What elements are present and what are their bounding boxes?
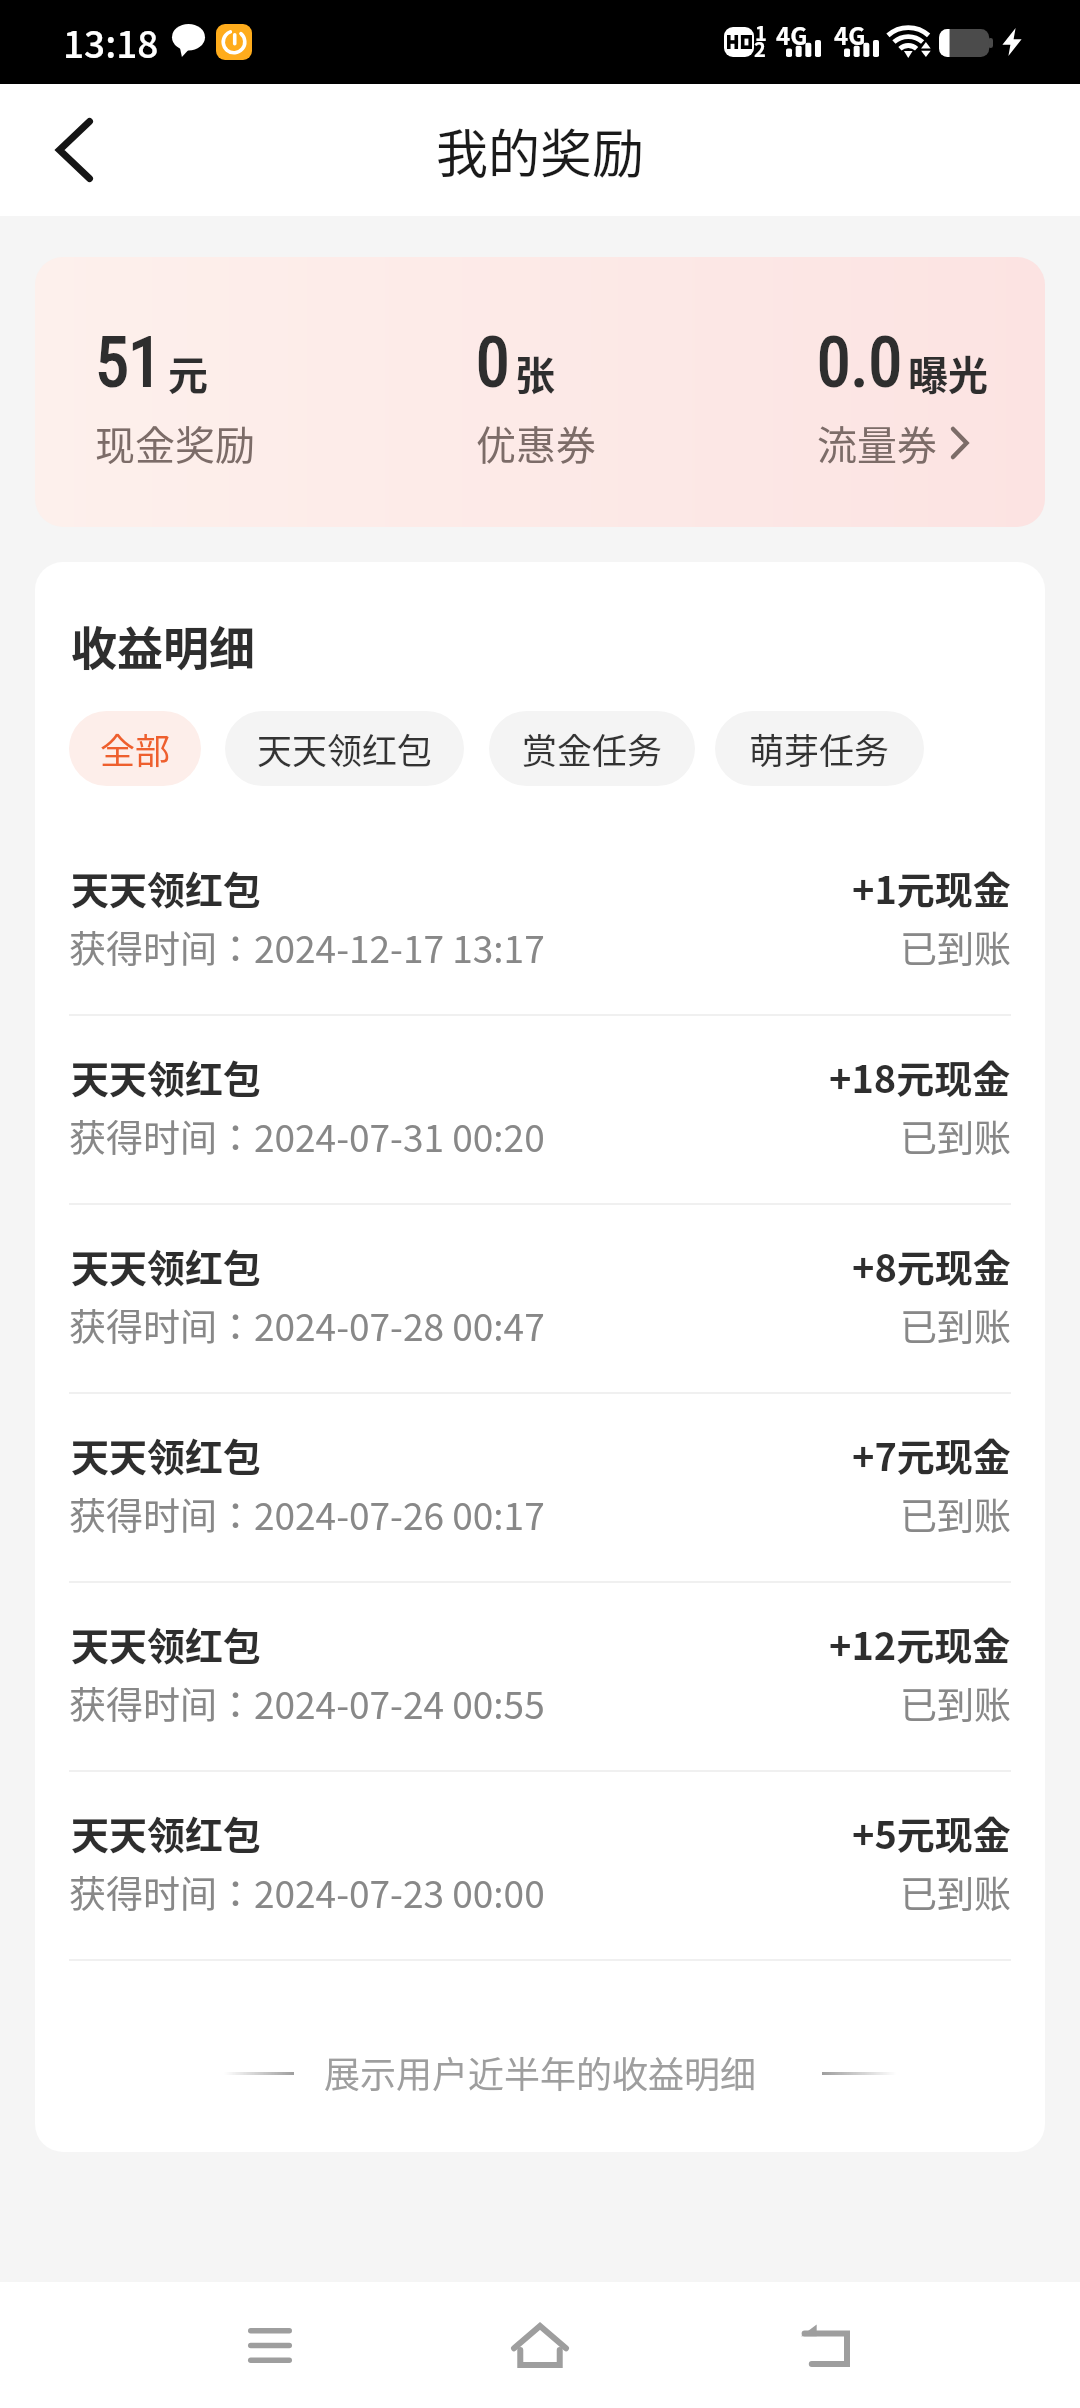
button[interactable]: 天天领红包 (35, 1772, 1045, 1959)
staticText: 收益明细 (71, 612, 255, 679)
staticText: 天天领红包 (71, 860, 262, 915)
staticText: 已到账 (900, 1487, 1011, 1541)
staticText: 2 (754, 34, 766, 63)
staticText: 已到账 (900, 1865, 1011, 1919)
staticText: 流量券 (817, 414, 937, 472)
button[interactable]: Home (480, 2295, 600, 2395)
staticText: 张 (515, 344, 555, 402)
staticText: 获得时间：2024-07-23 00:00 (69, 1865, 545, 1919)
staticText: +8元现金 (852, 1238, 1011, 1293)
staticText: 我的奖励 (436, 113, 645, 188)
staticText: 获得时间：2024-07-26 00:17 (69, 1487, 545, 1541)
staticText: +5元现金 (852, 1805, 1011, 1860)
button[interactable]: Back (22, 98, 126, 202)
staticText: 1 (755, 18, 767, 47)
staticText: 萌芽任务 (749, 723, 890, 774)
staticText: 天天领红包 (257, 723, 433, 774)
button[interactable]: 天天领红包 (35, 1583, 1045, 1770)
staticText: 已到账 (900, 1298, 1011, 1352)
button[interactable]: Recent apps (210, 2295, 330, 2395)
staticText: 51 (95, 323, 163, 403)
staticText: 13:18 (63, 15, 159, 69)
button[interactable]: 天天领红包 (35, 1016, 1045, 1203)
staticText: 4G (834, 17, 866, 52)
staticText: 已到账 (900, 1109, 1011, 1163)
button[interactable]: Back (765, 2295, 885, 2395)
staticText: 曝光 (908, 344, 988, 402)
button[interactable]: 天天领红包 (35, 827, 1045, 1014)
staticText: 0 (476, 323, 510, 403)
staticText: 0.0 (817, 323, 903, 403)
button[interactable]: 51 (35, 257, 1045, 527)
button[interactable]: 全部 (69, 711, 201, 786)
staticText: 天天领红包 (71, 1616, 262, 1671)
staticText: 4G (776, 17, 808, 52)
staticText: 现金奖励 (95, 414, 255, 472)
staticText: 已到账 (900, 1676, 1011, 1730)
staticText: 优惠券 (476, 414, 596, 472)
button[interactable]: 萌芽任务 (715, 711, 924, 786)
button[interactable]: 天天领红包 (35, 1394, 1045, 1581)
staticText: 已到账 (900, 920, 1011, 974)
staticText: +1元现金 (852, 860, 1011, 915)
staticText: +7元现金 (852, 1427, 1011, 1482)
button[interactable]: 赏金任务 (489, 711, 695, 786)
staticText: 获得时间：2024-12-17 13:17 (69, 920, 545, 974)
staticText: 天天领红包 (71, 1238, 262, 1293)
staticText: 获得时间：2024-07-31 00:20 (69, 1109, 545, 1163)
staticText: 获得时间：2024-07-28 00:47 (69, 1298, 545, 1352)
button[interactable]: 天天领红包 (225, 711, 464, 786)
staticText: 元 (168, 344, 208, 402)
staticText: 获得时间：2024-07-24 00:55 (69, 1676, 545, 1730)
staticText: 天天领红包 (71, 1427, 262, 1482)
staticText: 全部 (100, 723, 171, 774)
button[interactable]: 天天领红包 (35, 1205, 1045, 1392)
staticText: +18元现金 (829, 1049, 1011, 1104)
staticText: 天天领红包 (71, 1049, 262, 1104)
staticText: 赏金任务 (522, 723, 663, 774)
staticText: 展示用户近半年的收益明细 (324, 2046, 757, 2098)
staticText: 天天领红包 (71, 1805, 262, 1860)
staticText: +12元现金 (829, 1616, 1011, 1671)
